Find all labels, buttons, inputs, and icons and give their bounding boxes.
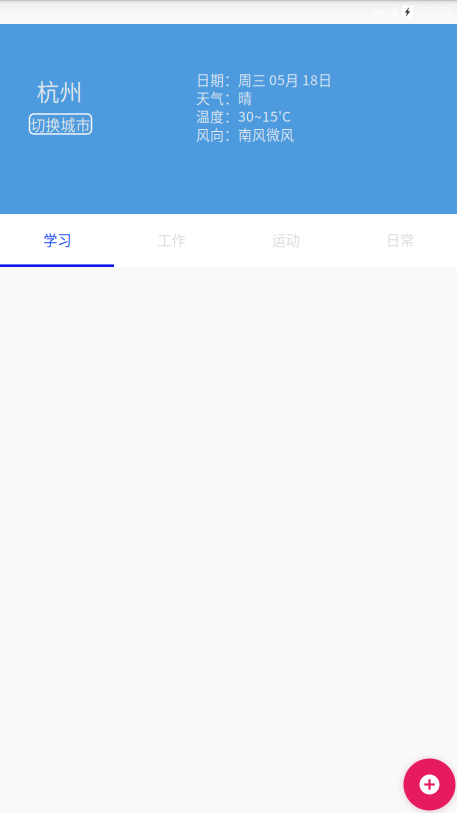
staticText: 风向：南风微风: [196, 124, 294, 144]
staticText: 学习: [43, 229, 71, 249]
staticText: 工作: [157, 229, 185, 249]
staticText: 温度：30~15'C: [196, 106, 291, 126]
staticText: 运动: [272, 229, 300, 249]
staticText: 切换城市: [30, 113, 90, 135]
button[interactable]: 日常: [343, 214, 457, 267]
button[interactable]: 运动: [228, 214, 343, 267]
staticText: 杭州: [36, 74, 82, 107]
button[interactable]: 工作: [114, 214, 228, 267]
staticText: 日常: [386, 229, 414, 249]
staticText: 天气：晴: [196, 87, 252, 107]
button[interactable]: 切换城市: [29, 114, 91, 134]
button[interactable]: 学习: [0, 214, 114, 267]
button[interactable]: Add: [403, 758, 455, 810]
staticText: 日期：周三 05月 18日: [196, 69, 332, 89]
